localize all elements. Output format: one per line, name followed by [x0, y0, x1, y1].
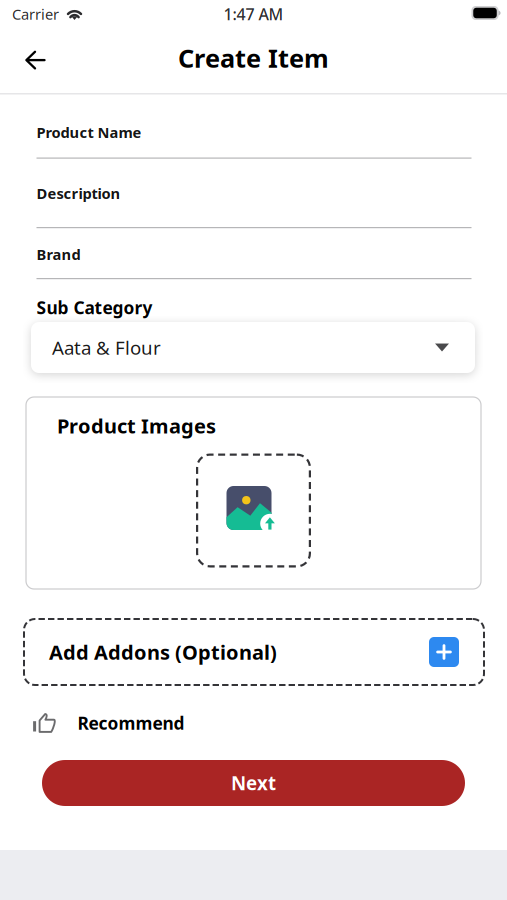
- staticText: Next: [231, 771, 276, 795]
- button[interactable]: Back: [10, 38, 60, 82]
- staticText: Description: [36, 183, 120, 199]
- staticText: Create Item: [178, 41, 329, 75]
- button[interactable]: Aata & Flour: [31, 322, 475, 373]
- staticText: Brand: [36, 244, 80, 260]
- staticText: Add Addons (Optional): [49, 639, 277, 665]
- staticText: Recommend: [77, 711, 184, 734]
- staticText: Aata & Flour: [52, 335, 161, 360]
- staticText: 1:47 AM: [223, 3, 283, 25]
- button[interactable]: Next: [42, 760, 465, 806]
- staticText: Product Name: [36, 122, 141, 138]
- button[interactable]: Upload product image: [196, 453, 311, 567]
- button[interactable]: Add Addons (Optional): [23, 618, 485, 686]
- staticText: Carrier: [12, 4, 59, 24]
- staticText: Sub Category: [36, 296, 152, 314]
- button[interactable]: Recommend: [33, 706, 248, 740]
- staticText: Product Images: [57, 412, 216, 429]
